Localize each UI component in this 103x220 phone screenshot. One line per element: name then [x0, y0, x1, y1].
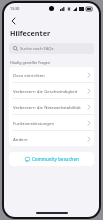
button[interactable]: Suche nach FAQs: [9, 43, 94, 54]
staticText: Funktionsleistungen: [13, 120, 88, 126]
staticText: Deco einrichten: [13, 72, 88, 78]
staticText: Verbessern die Geschwindigkeit: [13, 88, 88, 94]
staticText: Community besuchen: [32, 156, 79, 162]
button[interactable]: Andere: [9, 131, 94, 146]
button[interactable]: Verbessern die Geschwindigkeit: [9, 83, 94, 98]
staticText: Hilfecenter: [10, 28, 51, 38]
button[interactable]: Verbessern die Netzwerkstabilität: [9, 99, 94, 114]
button[interactable]: Funktionsleistungen: [9, 115, 94, 130]
staticText: Verbessern die Netzwerkstabilität: [13, 104, 88, 110]
button[interactable]: Community besuchen: [9, 152, 94, 166]
button[interactable]: Back: [8, 16, 18, 26]
staticText: Suche nach FAQs: [20, 46, 54, 52]
button[interactable]: Deco einrichten: [9, 67, 94, 82]
staticText: Häufig gestellte Fragen: [10, 60, 51, 65]
staticText: Andere: [13, 136, 88, 142]
staticText: 13:30: [10, 6, 20, 11]
